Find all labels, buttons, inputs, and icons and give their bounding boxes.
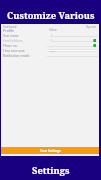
button[interactable]: User name xyxy=(1,33,99,38)
staticText: Phone no. xyxy=(3,44,18,48)
staticText: Email address xyxy=(3,39,23,43)
button[interactable]: Save Settings xyxy=(1,147,99,154)
staticText: Notification emails xyxy=(3,54,30,58)
staticText: Profile xyxy=(3,28,15,33)
button[interactable]: Notification emails xyxy=(1,53,99,58)
button[interactable]: Dashboard xyxy=(3,25,17,29)
staticText: Select xyxy=(49,49,56,52)
staticText: Settings xyxy=(32,164,70,177)
other: Active xyxy=(93,39,96,42)
button[interactable]: Settings xyxy=(0,156,101,180)
button[interactable]: Phone no. xyxy=(1,43,99,48)
staticText: Value xyxy=(49,28,57,32)
staticText: Save Settings xyxy=(40,149,61,153)
button[interactable]: Time zone area xyxy=(1,48,99,53)
staticText: Customize Various xyxy=(7,9,95,22)
staticText: Time zone area xyxy=(3,49,25,53)
button[interactable]: Sign out xyxy=(86,25,97,29)
staticText: User name xyxy=(3,34,19,38)
button[interactable]: Customize Various xyxy=(0,0,101,24)
other: Active xyxy=(93,44,96,47)
button[interactable]: Email address xyxy=(1,38,99,43)
